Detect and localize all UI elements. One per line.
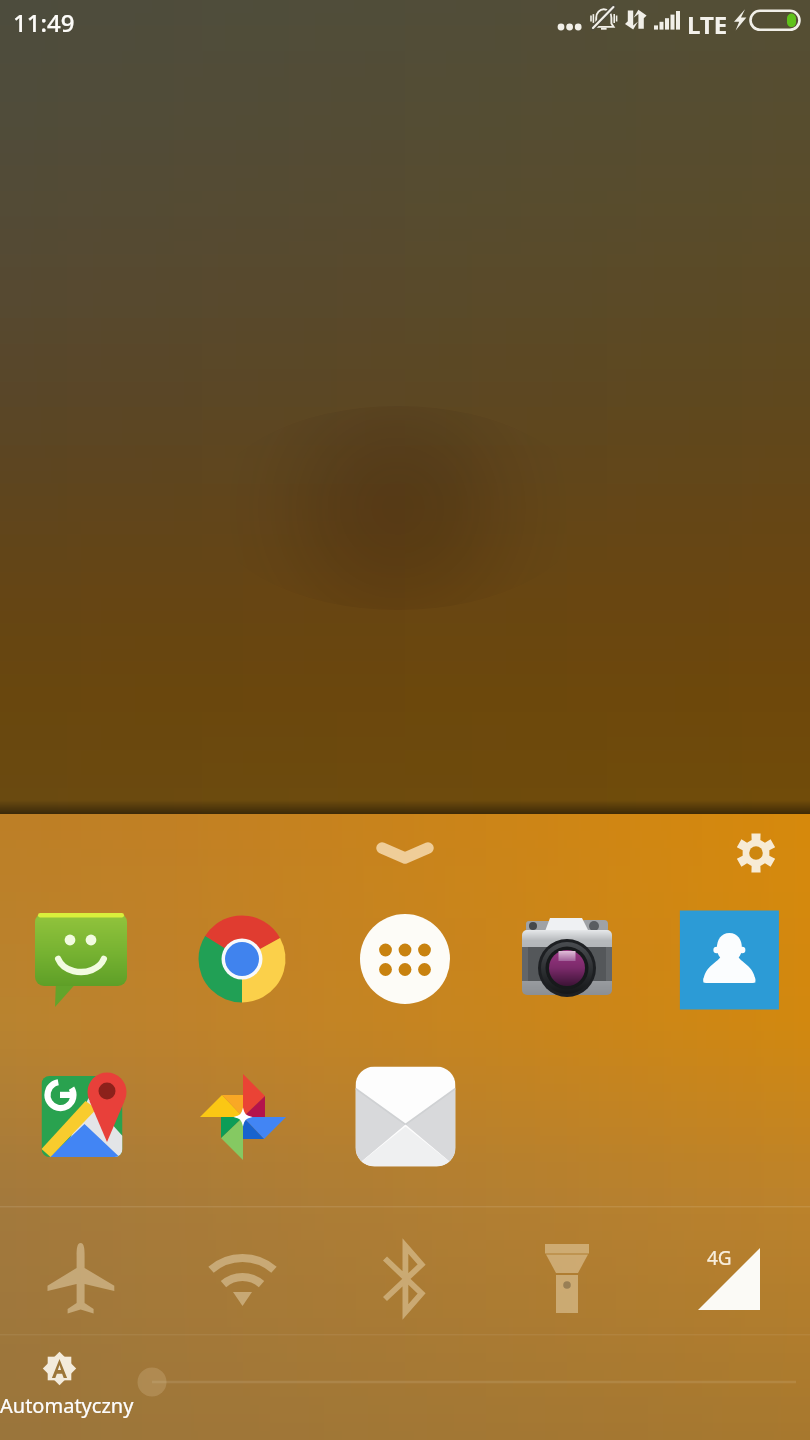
button[interactable]: Maps [33, 1070, 129, 1166]
button[interactable]: Collapse panel [370, 830, 440, 874]
button[interactable]: All apps [357, 912, 453, 1008]
button[interactable]: Bluetooth [340, 1215, 470, 1333]
button[interactable]: Camera [519, 912, 615, 1008]
button[interactable]: Chrome [195, 912, 291, 1008]
button[interactable]: Airplane mode [16, 1215, 146, 1333]
button[interactable]: Photos [195, 1070, 291, 1166]
staticText: Automatyczny [0, 1392, 134, 1419]
button[interactable]: Brightness slider [130, 1352, 800, 1414]
button[interactable]: Email [357, 1070, 453, 1166]
button[interactable]: Automatic brightness [6, 1340, 126, 1436]
button[interactable]: Wi-Fi [178, 1215, 308, 1333]
button[interactable]: Messaging [33, 912, 129, 1008]
staticText: 4G [707, 1245, 732, 1271]
staticText: 11:49 [13, 6, 75, 39]
button[interactable]: Settings [724, 821, 788, 885]
button[interactable]: Contacts [681, 912, 777, 1008]
button[interactable]: Flashlight [502, 1215, 632, 1333]
staticText: LTE [687, 8, 728, 41]
button[interactable]: Mobile data [664, 1215, 794, 1333]
